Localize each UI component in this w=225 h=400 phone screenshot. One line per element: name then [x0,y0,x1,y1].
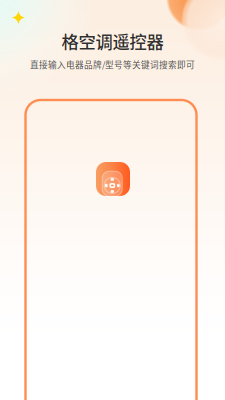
staticText: 格空调遥控器 [61,28,163,54]
staticText: 直接输入电器品牌/型号等关键词搜索即可 [30,58,195,71]
